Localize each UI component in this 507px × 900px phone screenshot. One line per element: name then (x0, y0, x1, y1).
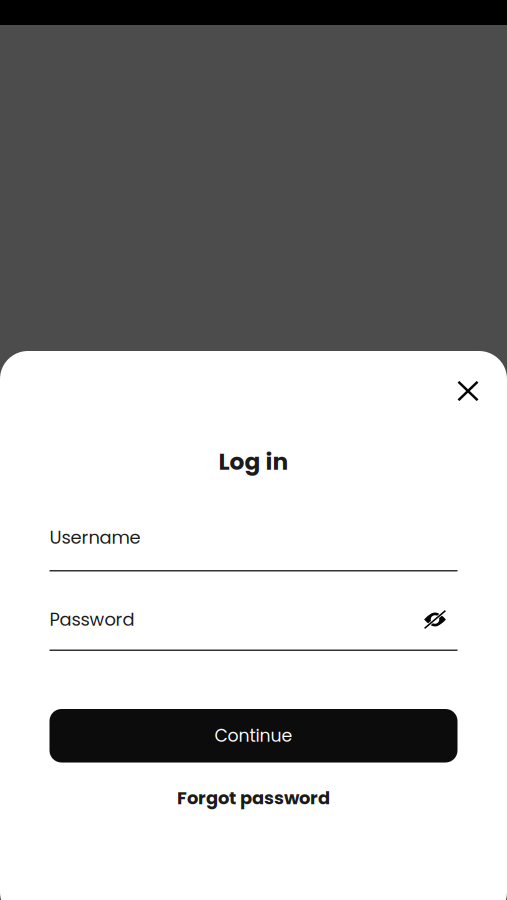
button[interactable]: Username (49, 525, 457, 571)
staticText: Log in (218, 445, 288, 478)
button[interactable]: Close (445, 368, 491, 414)
button[interactable]: Forgot password (163, 782, 344, 813)
staticText: Continue (214, 724, 292, 748)
staticText: Password (49, 607, 134, 632)
button[interactable]: Continue (49, 709, 457, 762)
button[interactable]: Show password (412, 604, 457, 634)
staticText: Username (49, 525, 140, 550)
staticText: Forgot password (177, 785, 330, 810)
button[interactable]: Password (49, 604, 457, 651)
